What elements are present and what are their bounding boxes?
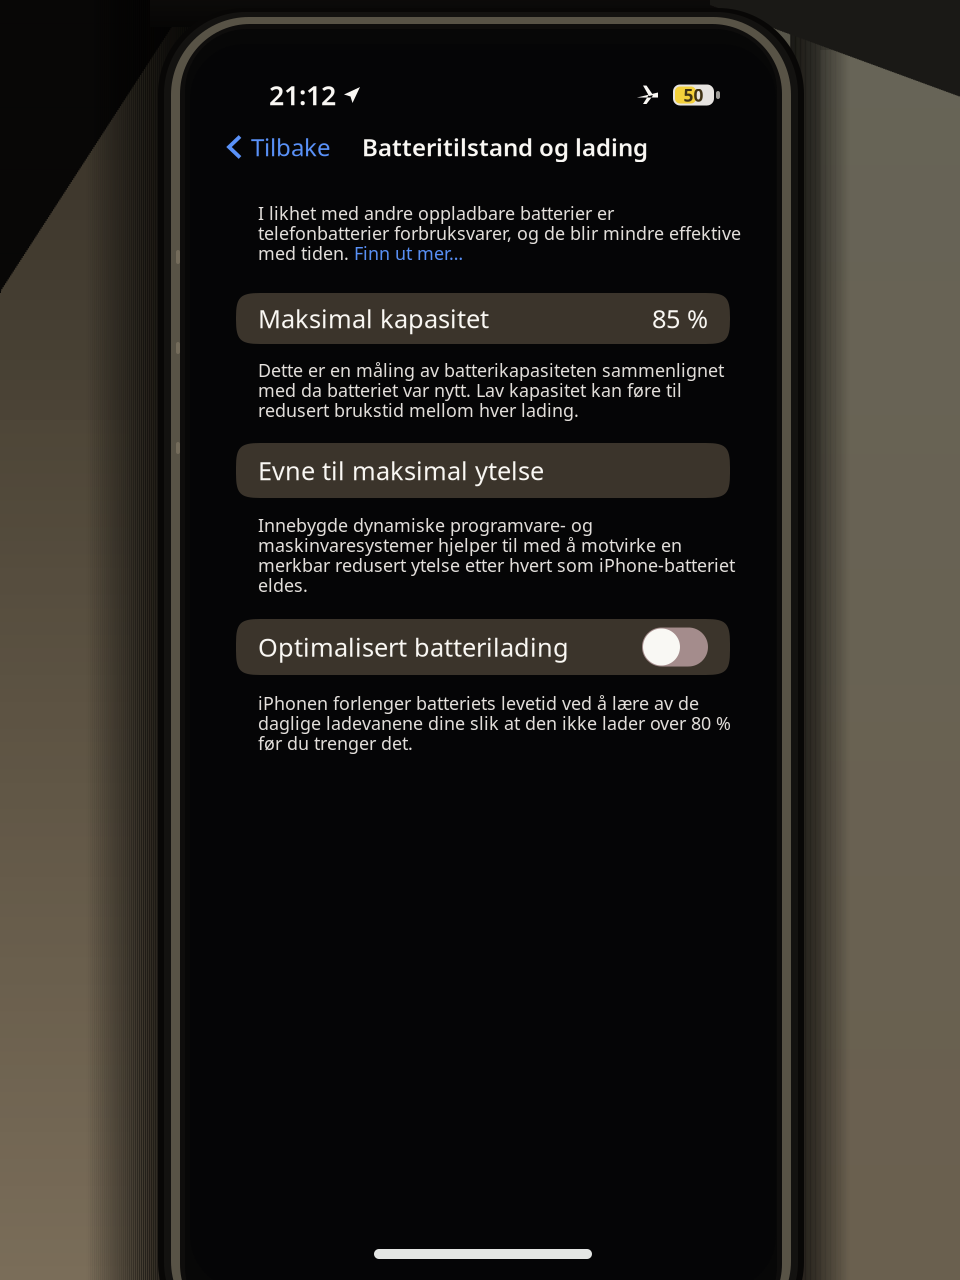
staticText: maskinvaresystemer hjelper til med å mot… — [258, 533, 682, 557]
staticText: 85 % — [652, 301, 708, 336]
staticText: Maksimal kapasitet — [258, 301, 489, 336]
staticText: telefonbatterier forbruksvarer, og de bl… — [258, 221, 741, 245]
staticText: Tilbake — [251, 131, 331, 163]
staticText: eldes. — [258, 573, 308, 597]
button[interactable]: Tilbake — [190, 122, 347, 172]
staticText: med tiden. — [258, 241, 354, 265]
staticText: før du trenger det. — [258, 731, 413, 755]
navigationBar: Batteritilstand og lading — [190, 122, 776, 172]
staticText: med da batteriet var nytt. Lav kapasitet… — [258, 378, 682, 402]
staticText: Batteritilstand og lading — [362, 131, 648, 163]
staticText: iPhonen forlenger batteriets levetid ved… — [258, 691, 699, 715]
staticText: Optimalisert batterilading — [258, 630, 569, 664]
staticText: I likhet med andre oppladbare batterier … — [258, 201, 614, 225]
staticText: redusert brukstid mellom hver lading. — [258, 398, 579, 422]
staticText: Innebygde dynamiske programvare- og — [258, 513, 593, 537]
staticText: daglige ladevanene dine slik at den ikke… — [258, 711, 731, 735]
button[interactable]: Finn ut mer… — [354, 241, 463, 265]
staticText: Evne til maksimal ytelse — [258, 453, 544, 488]
staticText: Finn ut mer… — [354, 241, 463, 265]
staticText: 21:12 — [269, 77, 336, 113]
button[interactable]: Evne til maksimal ytelse — [236, 443, 730, 498]
staticText: merkbar redusert ytelse etter hvert som … — [258, 553, 735, 577]
button[interactable]: Optimalisert batterilading — [642, 627, 708, 666]
staticText: Dette er en måling av batterikapasiteten… — [258, 358, 724, 382]
staticText: 50 — [683, 83, 703, 107]
